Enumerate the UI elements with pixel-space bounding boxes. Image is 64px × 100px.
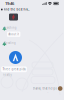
staticText: 19:46 [5, 1, 14, 6]
staticText: Find the best hiking trails near me [4, 8, 30, 11]
staticText: nearby [3, 73, 12, 76]
staticText: about it [8, 32, 19, 36]
staticText: Reading [4, 41, 16, 45]
staticText: Three great picks [2, 68, 25, 71]
staticText: Searching [4, 26, 17, 29]
staticText: thanks, that helps [32, 87, 56, 90]
